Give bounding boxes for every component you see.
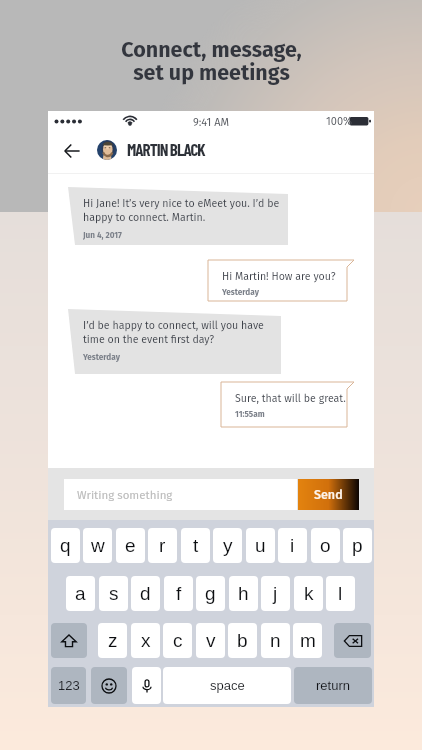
staticText: return xyxy=(316,678,350,693)
button[interactable]: 123 xyxy=(51,667,86,704)
staticText: Hi Martin! How are you? xyxy=(222,270,336,283)
staticText: y xyxy=(223,535,233,556)
staticText: Send xyxy=(314,487,343,502)
other: Backspace xyxy=(344,632,362,650)
staticText: o xyxy=(320,535,331,556)
staticText: 100% xyxy=(326,115,353,128)
button[interactable]: p xyxy=(343,528,372,563)
staticText: g xyxy=(205,583,216,604)
staticText: n xyxy=(270,630,281,651)
button[interactable]: Emoji xyxy=(91,667,127,704)
button[interactable]: t xyxy=(181,528,210,563)
staticText: 123 xyxy=(58,678,80,693)
staticText: a xyxy=(75,583,86,604)
staticText: q xyxy=(60,535,71,556)
staticText: Writing something xyxy=(77,488,173,502)
button[interactable]: w xyxy=(83,528,112,563)
staticText: s xyxy=(109,583,119,604)
button[interactable]: k xyxy=(294,576,323,611)
button[interactable]: l xyxy=(326,576,355,611)
button[interactable]: v xyxy=(196,623,225,658)
staticText: I’d be happy to connect, will you have t… xyxy=(83,319,264,346)
staticText: k xyxy=(304,583,314,604)
staticText: w xyxy=(91,535,105,556)
button[interactable]: m xyxy=(293,623,322,658)
button[interactable]: y xyxy=(213,528,242,563)
button[interactable]: h xyxy=(229,576,258,611)
staticText: MARTIN BLACK xyxy=(127,139,205,159)
staticText: d xyxy=(140,583,151,604)
other: Emoji xyxy=(101,678,117,694)
button[interactable]: d xyxy=(131,576,160,611)
button[interactable]: Voice input xyxy=(132,667,161,704)
staticText: j xyxy=(273,583,278,604)
button[interactable]: f xyxy=(164,576,193,611)
staticText: h xyxy=(238,583,249,604)
button[interactable]: b xyxy=(228,623,257,658)
staticText: Connect, message, set up meetings xyxy=(121,37,302,86)
button[interactable]: s xyxy=(99,576,128,611)
button[interactable]: Writing something xyxy=(64,479,297,510)
button[interactable]: i xyxy=(278,528,307,563)
staticText: x xyxy=(141,630,151,651)
staticText: c xyxy=(173,630,183,651)
button[interactable]: Back xyxy=(60,139,83,162)
staticText: m xyxy=(300,630,316,651)
staticText: z xyxy=(108,630,118,651)
staticText: Yesterday xyxy=(222,287,259,297)
button[interactable]: n xyxy=(261,623,290,658)
other: Voice input xyxy=(139,678,155,694)
staticText: f xyxy=(176,583,182,604)
button[interactable]: Send xyxy=(298,479,359,510)
staticText: r xyxy=(159,535,166,556)
button[interactable]: x xyxy=(131,623,160,658)
staticText: b xyxy=(237,630,248,651)
button[interactable]: Backspace xyxy=(334,623,371,658)
staticText: 9:41 AM xyxy=(193,116,230,129)
button[interactable]: g xyxy=(196,576,225,611)
staticText: p xyxy=(352,535,363,556)
staticText: t xyxy=(193,535,199,556)
button[interactable]: z xyxy=(98,623,127,658)
button[interactable]: Shift xyxy=(51,623,87,658)
button[interactable]: r xyxy=(148,528,177,563)
staticText: Hi Jane! It’s very nice to eMeet you. I’… xyxy=(83,197,280,224)
staticText: l xyxy=(338,583,343,604)
button[interactable]: space xyxy=(163,667,291,704)
staticText: space xyxy=(210,678,245,693)
button[interactable]: c xyxy=(163,623,192,658)
staticText: Yesterday xyxy=(83,352,120,362)
staticText: Sure, that will be great. xyxy=(235,392,346,405)
staticText: Jun 4, 2017 xyxy=(83,230,122,240)
other: Shift xyxy=(61,633,77,649)
button[interactable]: return xyxy=(294,667,372,704)
button[interactable]: u xyxy=(246,528,275,563)
staticText: u xyxy=(255,535,266,556)
button[interactable]: j xyxy=(261,576,290,611)
staticText: v xyxy=(206,630,216,651)
button[interactable]: e xyxy=(116,528,145,563)
button[interactable]: q xyxy=(51,528,80,563)
button[interactable]: a xyxy=(66,576,95,611)
button[interactable]: o xyxy=(311,528,340,563)
staticText: 11:55am xyxy=(235,409,265,419)
staticText: i xyxy=(290,535,295,556)
staticText: e xyxy=(125,535,136,556)
